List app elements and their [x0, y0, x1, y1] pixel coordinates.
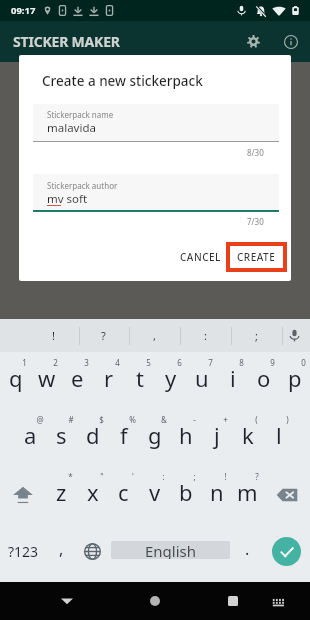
button[interactable]: .: [232, 523, 263, 580]
button[interactable]: Recents: [219, 587, 247, 615]
button[interactable]: 8: [217, 352, 248, 409]
button[interactable]: Change language: [77, 523, 108, 580]
staticText: ": [100, 471, 104, 482]
button[interactable]: !: [201, 466, 232, 523]
button[interactable]: Home: [141, 587, 169, 615]
staticText: &: [161, 414, 167, 425]
button[interactable]: ,: [46, 523, 77, 580]
staticText: #: [68, 414, 74, 425]
button[interactable]: Shift: [0, 466, 46, 523]
staticText: STICKER MAKER: [13, 32, 120, 51]
staticText: e: [71, 363, 84, 393]
button[interactable]: Back: [53, 587, 81, 615]
button[interactable]: -: [170, 409, 201, 466]
staticText: malavida: [47, 120, 96, 136]
staticText: ;: [193, 471, 196, 482]
staticText: 6: [177, 357, 182, 368]
staticText: f: [120, 420, 128, 450]
button[interactable]: 4: [93, 352, 124, 409]
button[interactable]: Voice input: [278, 319, 310, 352]
button[interactable]: :: [180, 319, 230, 352]
button[interactable]: 9: [248, 352, 279, 409]
button[interactable]: ;: [170, 466, 201, 523]
staticText: !: [224, 471, 227, 482]
button[interactable]: 2: [31, 352, 62, 409]
button[interactable]: ?: [78, 319, 128, 352]
staticText: z: [56, 477, 67, 507]
staticText: ,: [153, 328, 156, 343]
button[interactable]: Settings: [241, 29, 266, 54]
staticText: @: [36, 414, 44, 425]
staticText: o: [257, 363, 271, 393]
staticText: ?: [255, 471, 259, 482]
staticText: (: [255, 414, 258, 425]
button[interactable]: :: [139, 466, 170, 523]
staticText: :: [204, 328, 207, 343]
button[interactable]: CREATE: [226, 242, 287, 272]
button[interactable]: 3: [62, 352, 93, 409]
staticText: 4: [115, 357, 120, 368]
staticText: q: [9, 363, 23, 393]
button[interactable]: @: [15, 409, 46, 466]
staticText: 09:17: [11, 4, 36, 17]
button[interactable]: ": [77, 466, 108, 523]
staticText: ?123: [8, 542, 39, 561]
staticText: 3: [84, 357, 89, 368]
staticText: ?: [101, 328, 106, 343]
staticText: c: [118, 477, 129, 507]
button[interactable]: (: [232, 409, 263, 466]
staticText: 8: [239, 357, 244, 368]
staticText: p: [288, 363, 302, 393]
button[interactable]: CANCEL: [174, 244, 226, 269]
staticText: d: [86, 420, 100, 450]
button[interactable]: ): [263, 409, 294, 466]
button[interactable]: Backspace: [263, 466, 310, 523]
staticText: 2: [53, 357, 58, 368]
button[interactable]: 1: [0, 352, 31, 409]
button[interactable]: 5: [124, 352, 155, 409]
staticText: .: [245, 538, 250, 560]
button[interactable]: Done: [272, 537, 301, 566]
staticText: m: [237, 477, 258, 507]
staticText: 1: [22, 357, 27, 368]
staticText: g: [148, 420, 162, 450]
staticText: !: [52, 328, 55, 343]
staticText: %: [129, 414, 136, 425]
button[interactable]: English: [111, 541, 230, 559]
button[interactable]: ': [108, 466, 139, 523]
staticText: s: [56, 420, 67, 450]
button[interactable]: ?: [232, 466, 263, 523]
button[interactable]: #: [46, 409, 77, 466]
staticText: u: [195, 363, 209, 393]
button[interactable]: ,: [129, 319, 179, 352]
staticText: x: [87, 477, 99, 507]
button[interactable]: &: [139, 409, 170, 466]
staticText: CREATE: [237, 250, 276, 264]
button[interactable]: 0: [279, 352, 310, 409]
staticText: r: [104, 363, 114, 393]
button[interactable]: Info: [278, 29, 303, 54]
button[interactable]: %: [108, 409, 139, 466]
staticText: v: [149, 477, 161, 507]
button[interactable]: ;: [231, 319, 281, 352]
staticText: j: [214, 420, 220, 450]
button[interactable]: $: [77, 409, 108, 466]
button[interactable]: *: [46, 466, 77, 523]
staticText: 7/30: [247, 216, 264, 227]
staticText: -: [193, 414, 196, 425]
staticText: ): [286, 414, 289, 425]
button[interactable]: 7: [186, 352, 217, 409]
button[interactable]: !: [28, 319, 78, 352]
staticText: i: [230, 363, 236, 393]
staticText: b: [179, 477, 193, 507]
button[interactable]: ?123: [0, 523, 46, 580]
staticText: 0: [301, 357, 306, 368]
staticText: ;: [255, 328, 258, 343]
button[interactable]: 6: [155, 352, 186, 409]
staticText: h: [179, 420, 193, 450]
button[interactable]: Switch keyboard: [264, 587, 292, 615]
button[interactable]: +: [201, 409, 232, 466]
staticText: y: [165, 363, 177, 393]
staticText: l: [276, 420, 282, 450]
staticText: 7: [208, 357, 213, 368]
